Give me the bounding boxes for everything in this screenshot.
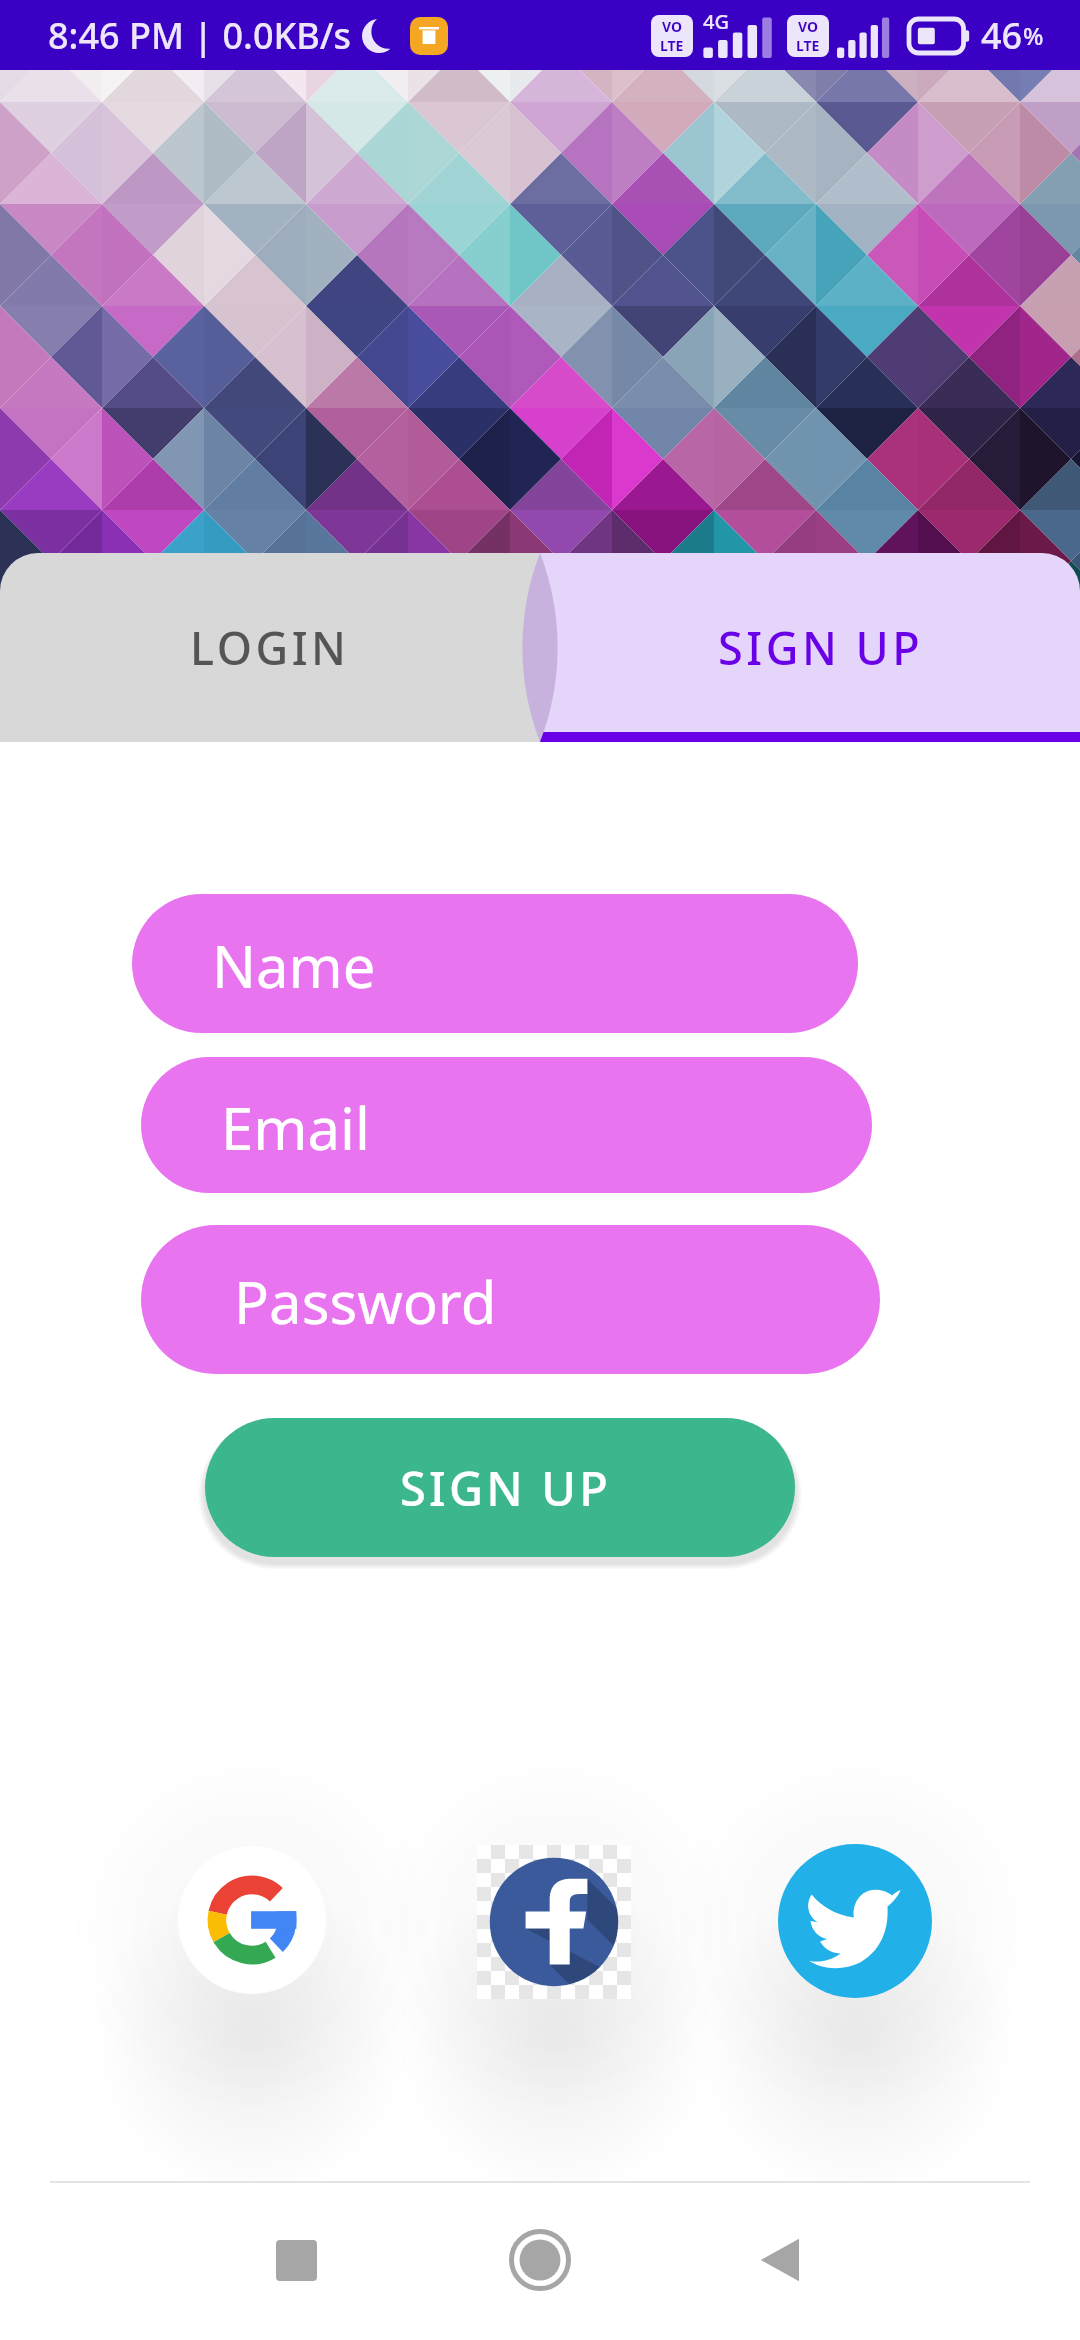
button[interactable]: Sign up with Twitter xyxy=(778,1844,932,1998)
button[interactable]: Home xyxy=(480,2200,600,2320)
button[interactable]: LOGIN xyxy=(0,553,540,742)
staticText: 4G xyxy=(703,8,729,35)
staticText: Password xyxy=(234,1262,497,1341)
button[interactable]: SIGN UP xyxy=(540,553,1080,742)
button[interactable]: Recent apps xyxy=(236,2200,356,2320)
staticText: SIGN UP xyxy=(400,1456,612,1520)
staticText: LOGIN xyxy=(190,617,350,678)
button[interactable]: Email xyxy=(141,1057,872,1193)
staticText: 8:46 PM | 0.0KB/s xyxy=(48,11,352,60)
staticText: Name xyxy=(212,926,376,1005)
staticText: % xyxy=(1023,19,1044,52)
staticText: 46 xyxy=(981,11,1023,60)
staticText: SIGN UP xyxy=(718,617,924,678)
staticText: VO xyxy=(662,17,683,36)
button[interactable]: Sign up with Facebook xyxy=(477,1845,631,1999)
button[interactable]: Password xyxy=(141,1225,880,1374)
button[interactable]: Back xyxy=(722,2200,842,2320)
staticText: LTE xyxy=(660,36,684,55)
staticText: VO xyxy=(798,17,819,36)
staticText: LTE xyxy=(796,36,820,55)
button[interactable]: SIGN UP xyxy=(205,1418,795,1557)
button[interactable]: Name xyxy=(132,894,858,1033)
button[interactable]: Sign up with Google xyxy=(178,1846,326,1994)
staticText: Email xyxy=(221,1088,370,1167)
